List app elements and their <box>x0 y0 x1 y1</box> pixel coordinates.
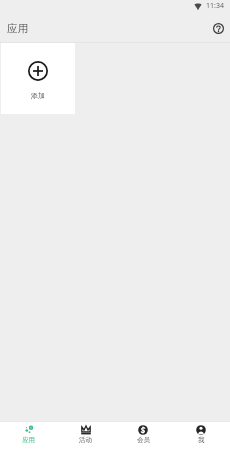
button[interactable]: Help <box>210 20 226 36</box>
button[interactable]: 活动 <box>57 422 114 450</box>
button[interactable]: 添加 <box>1 43 75 114</box>
staticText: 添加 <box>31 91 45 100</box>
staticText: 我 <box>198 436 205 444</box>
button[interactable]: 我 <box>172 422 230 450</box>
staticText: 11:34 <box>206 1 224 11</box>
staticText: 应用 <box>22 436 35 444</box>
staticText: 活动 <box>79 436 92 444</box>
staticText: 应用 <box>7 22 28 35</box>
button[interactable]: 应用 <box>0 422 57 450</box>
button[interactable]: 会员 <box>114 422 172 450</box>
staticText: 会员 <box>137 436 150 444</box>
